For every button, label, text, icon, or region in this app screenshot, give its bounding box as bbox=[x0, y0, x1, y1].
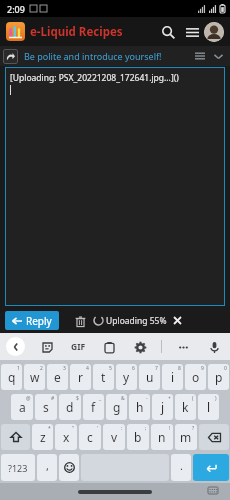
staticText: 2:09 bbox=[7, 3, 25, 15]
button[interactable]: q bbox=[1, 364, 22, 390]
staticText: o bbox=[192, 369, 200, 385]
button[interactable]: Back bbox=[6, 337, 25, 356]
button[interactable]: Emoji bbox=[59, 454, 79, 481]
staticText: 6 bbox=[132, 365, 135, 372]
button[interactable]: Backspace bbox=[199, 424, 229, 450]
staticText: x bbox=[63, 429, 70, 445]
button[interactable]: , bbox=[37, 454, 57, 481]
staticText: Reply bbox=[26, 314, 52, 328]
staticText: s bbox=[43, 399, 49, 415]
staticText: 1 bbox=[17, 365, 20, 372]
staticText: v bbox=[111, 429, 118, 445]
staticText: c bbox=[87, 429, 93, 445]
button[interactable]: Settings bbox=[130, 337, 150, 357]
button[interactable]: [Uploading: PSX_20221208_172641.jpg...](… bbox=[5, 67, 225, 306]
staticText: 9 bbox=[201, 365, 204, 372]
staticText: ) bbox=[215, 395, 217, 402]
staticText: e-Liquid Recipes bbox=[30, 24, 123, 40]
button[interactable]: o bbox=[185, 364, 206, 390]
button[interactable]: x bbox=[55, 424, 77, 450]
button[interactable]: t bbox=[93, 364, 114, 390]
button[interactable]: l bbox=[198, 394, 219, 420]
staticText: @ bbox=[26, 395, 31, 402]
button[interactable]: ?123 bbox=[1, 454, 35, 481]
button[interactable]: j bbox=[152, 394, 173, 420]
staticText: e bbox=[54, 369, 61, 385]
staticText: 5 bbox=[109, 365, 112, 372]
staticText: b bbox=[134, 429, 142, 445]
button[interactable]: Home bbox=[78, 490, 152, 494]
button[interactable]: Share bbox=[3, 49, 18, 64]
staticText: Be polite and introduce yourself! bbox=[24, 50, 162, 62]
staticText: a bbox=[19, 399, 26, 415]
staticText: $ bbox=[76, 395, 79, 402]
staticText: ! bbox=[169, 425, 171, 432]
button[interactable]: Menu bbox=[180, 20, 204, 44]
staticText: p bbox=[215, 369, 223, 385]
staticText: ?123 bbox=[8, 462, 28, 474]
button[interactable]: Cancel upload bbox=[171, 314, 184, 327]
button[interactable]: Enter bbox=[193, 454, 229, 481]
button[interactable]: z bbox=[32, 424, 53, 450]
button[interactable]: s bbox=[35, 394, 57, 420]
staticText: # bbox=[51, 395, 55, 402]
button[interactable]: y bbox=[116, 364, 137, 390]
staticText: _ bbox=[99, 395, 102, 402]
button[interactable]: n bbox=[151, 424, 173, 450]
button[interactable]: w bbox=[24, 364, 45, 390]
button[interactable]: Expand bbox=[209, 47, 227, 65]
staticText: g bbox=[113, 399, 121, 415]
button[interactable]: b bbox=[127, 424, 149, 450]
staticText: 0 bbox=[224, 365, 227, 372]
button[interactable]: u bbox=[139, 364, 160, 390]
button[interactable]: Delete bbox=[71, 312, 89, 330]
staticText: k bbox=[182, 399, 189, 415]
staticText: ? bbox=[192, 425, 195, 432]
button[interactable]: f bbox=[83, 394, 104, 420]
staticText: & bbox=[121, 395, 125, 402]
button[interactable]: GIF bbox=[69, 339, 88, 355]
staticText: 3 bbox=[63, 365, 66, 372]
button[interactable]: h bbox=[129, 394, 150, 420]
button[interactable]: m bbox=[175, 424, 197, 450]
button[interactable]: Clipboard bbox=[99, 337, 119, 357]
staticText: + bbox=[168, 395, 171, 402]
button[interactable]: Reply bbox=[5, 311, 59, 330]
staticText: t bbox=[101, 369, 106, 385]
staticText: GIF bbox=[71, 341, 86, 353]
button[interactable]: g bbox=[106, 394, 127, 420]
staticText: Uploading 55% bbox=[106, 315, 167, 327]
button[interactable]: d bbox=[59, 394, 81, 420]
staticText: l bbox=[207, 399, 211, 415]
staticText: r bbox=[78, 369, 83, 385]
staticText: ' bbox=[97, 425, 99, 432]
button[interactable]: e bbox=[47, 364, 68, 390]
button[interactable]: More options bbox=[173, 337, 193, 357]
button[interactable]: Shift bbox=[1, 424, 30, 450]
staticText: 7 bbox=[155, 365, 158, 372]
button[interactable]: a bbox=[11, 394, 33, 420]
staticText: n bbox=[158, 429, 166, 445]
button[interactable]: c bbox=[79, 424, 101, 450]
button[interactable]: Search bbox=[156, 20, 180, 44]
button[interactable]: . bbox=[171, 454, 191, 481]
button[interactable]: i bbox=[162, 364, 183, 390]
button[interactable]: k bbox=[175, 394, 196, 420]
staticText: [Uploading: PSX_20221208_172641.jpg...](… bbox=[10, 72, 179, 84]
staticText: y bbox=[123, 369, 130, 385]
staticText: 8 bbox=[178, 365, 181, 372]
button[interactable]: Voice input bbox=[204, 337, 224, 357]
button[interactable]: List bbox=[191, 47, 209, 65]
button[interactable]: Profile bbox=[204, 22, 224, 42]
button[interactable]: App icon bbox=[6, 22, 25, 41]
staticText: 4 bbox=[86, 365, 89, 372]
staticText: w bbox=[30, 369, 40, 385]
staticText: d bbox=[66, 399, 74, 415]
button[interactable]: p bbox=[208, 364, 229, 390]
other: Switch keyboard bbox=[208, 487, 218, 497]
button[interactable]: Stickers bbox=[37, 337, 57, 357]
button[interactable]: v bbox=[103, 424, 125, 450]
button[interactable]: r bbox=[70, 364, 91, 390]
staticText: i bbox=[171, 369, 175, 385]
